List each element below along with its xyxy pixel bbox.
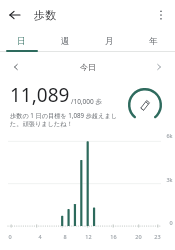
staticText: 20 bbox=[135, 233, 142, 240]
button[interactable]: Previous day bbox=[8, 59, 24, 75]
button[interactable]: 日 bbox=[0, 30, 43, 52]
button[interactable]: 年 bbox=[131, 30, 175, 52]
staticText: 0 bbox=[169, 219, 173, 226]
staticText: 11,089 bbox=[10, 82, 70, 108]
staticText: 23 bbox=[154, 233, 161, 240]
button[interactable]: Next day bbox=[151, 59, 167, 75]
staticText: 歩数の 1 日の目標を 1,089 歩超えまし た。頑張りましたね！ bbox=[10, 111, 118, 128]
staticText: 歩数 bbox=[34, 8, 56, 22]
staticText: 4 bbox=[38, 233, 42, 240]
staticText: 6k bbox=[166, 132, 173, 139]
staticText: 0 bbox=[8, 233, 12, 240]
staticText: 月 bbox=[105, 36, 114, 47]
staticText: /10,000 歩 bbox=[71, 97, 102, 106]
staticText: 年 bbox=[149, 36, 158, 47]
staticText: 16 bbox=[110, 233, 117, 240]
staticText: 日 bbox=[17, 36, 26, 47]
staticText: 週 bbox=[61, 36, 70, 47]
staticText: 8 bbox=[63, 233, 67, 240]
button[interactable]: 月 bbox=[87, 30, 131, 52]
staticText: 3k bbox=[166, 176, 173, 183]
staticText: 12 bbox=[85, 233, 92, 240]
button[interactable]: Back bbox=[0, 0, 30, 30]
button[interactable]: Edit goal bbox=[125, 85, 165, 125]
button[interactable]: 週 bbox=[43, 30, 87, 52]
button[interactable]: More options bbox=[147, 1, 175, 29]
staticText: 今日 bbox=[80, 62, 96, 72]
